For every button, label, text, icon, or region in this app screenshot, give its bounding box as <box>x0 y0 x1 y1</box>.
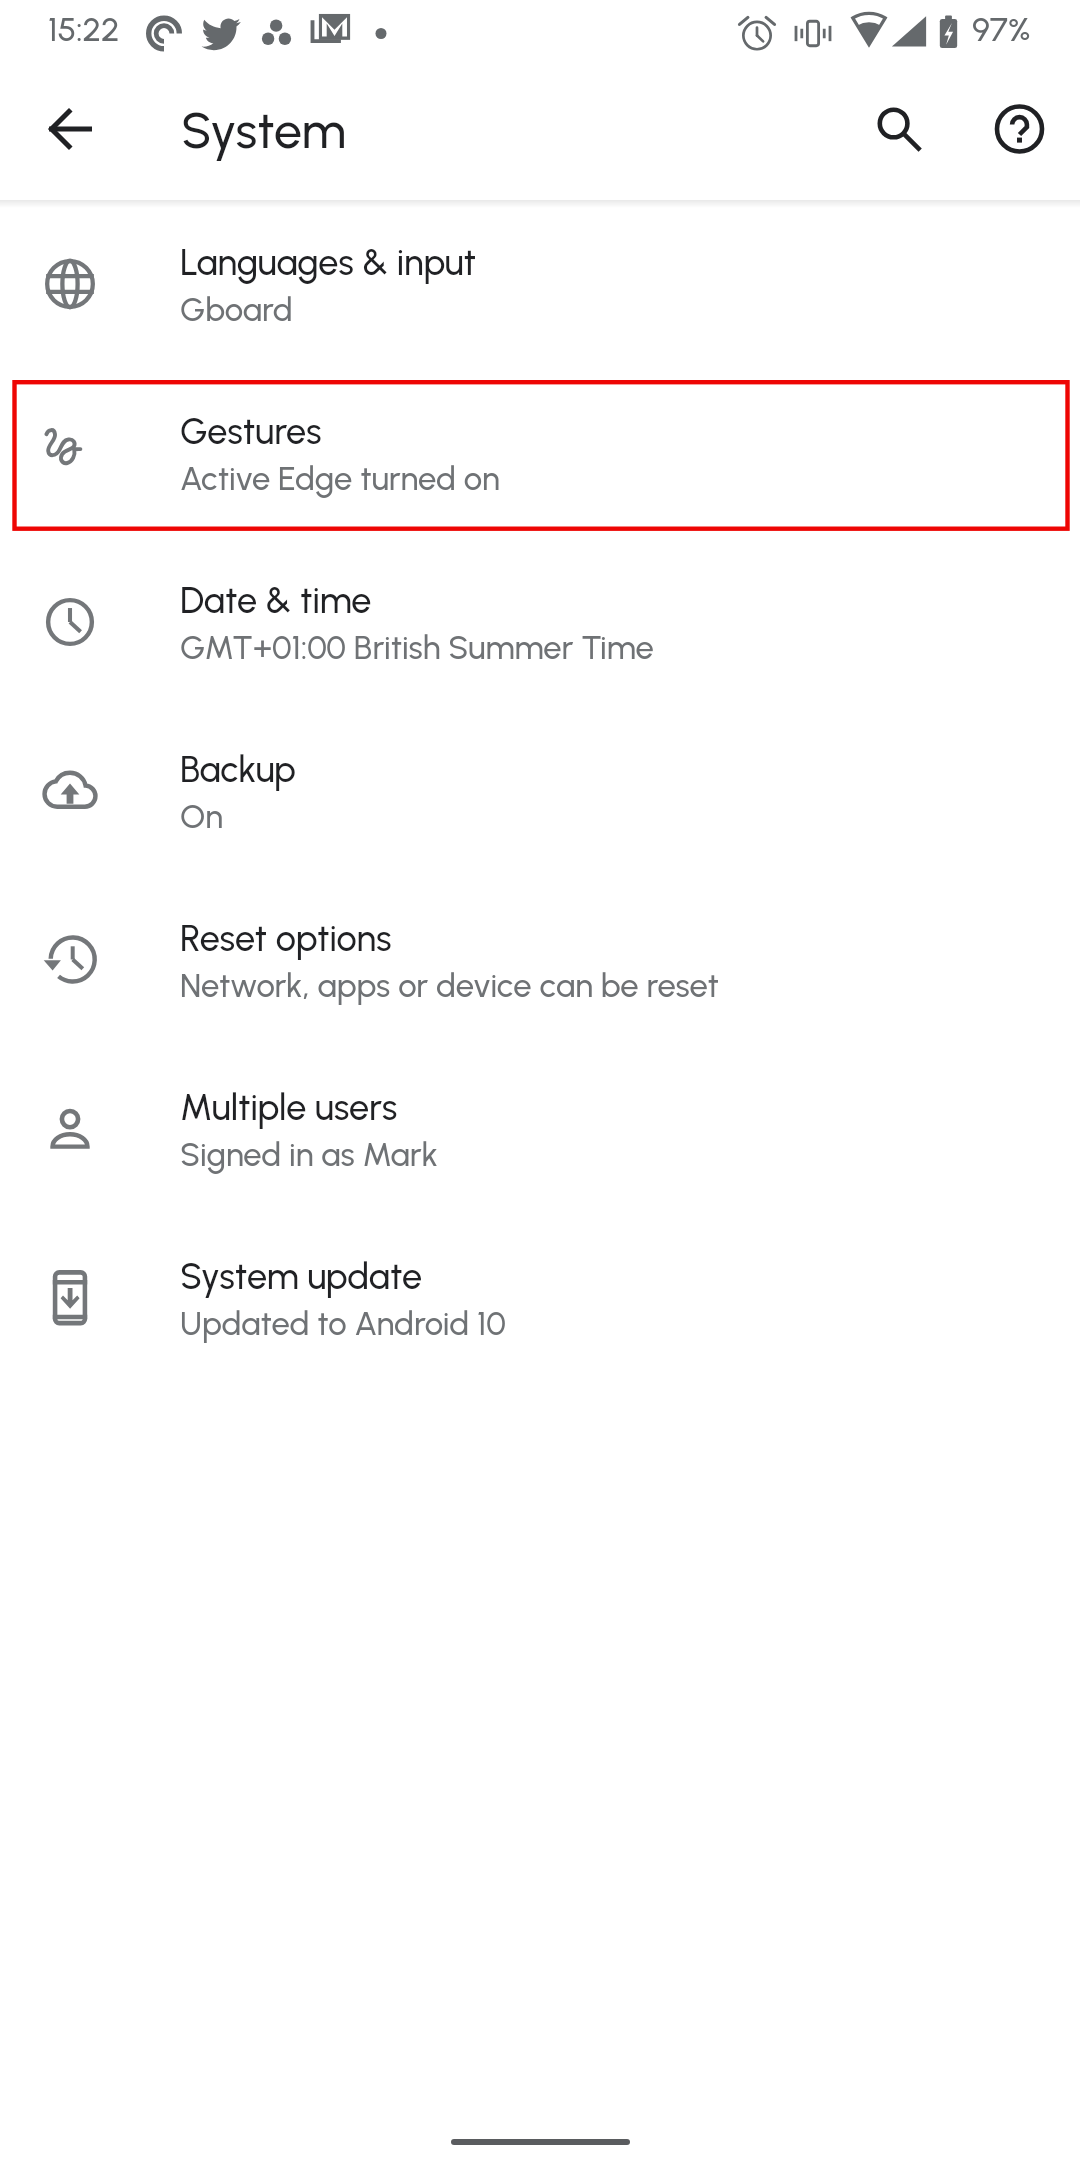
button[interactable]: Date & time <box>0 538 1080 707</box>
button[interactable]: Search <box>852 81 948 177</box>
staticText: 97% <box>972 9 1031 49</box>
staticText: Updated to Android 10 <box>180 1304 506 1343</box>
staticText: System update <box>180 1255 423 1298</box>
staticText: Backup <box>180 748 296 791</box>
staticText: GMT+01:00 British Summer Time <box>180 628 654 667</box>
staticText: System <box>181 100 346 160</box>
staticText: Gboard <box>180 290 293 329</box>
button[interactable]: Languages & input <box>0 200 1080 369</box>
staticText: Signed in as Mark <box>180 1135 438 1174</box>
button[interactable]: Help <box>971 81 1067 177</box>
staticText: Network, apps or device can be reset <box>180 966 719 1005</box>
button[interactable]: System update <box>0 1214 1080 1383</box>
staticText: Date & time <box>180 579 372 622</box>
staticText: 15:22 <box>48 9 120 49</box>
button[interactable]: Backup <box>0 707 1080 876</box>
staticText: Reset options <box>180 917 392 960</box>
staticText: Active Edge turned on <box>180 459 500 498</box>
button[interactable]: Back <box>22 81 118 177</box>
staticText: On <box>180 797 223 836</box>
staticText: Gestures <box>180 410 322 453</box>
button[interactable]: Reset options <box>0 876 1080 1045</box>
staticText: Multiple users <box>180 1086 398 1129</box>
staticText: Languages & input <box>180 241 477 284</box>
button[interactable]: Gestures <box>0 369 1080 538</box>
button[interactable]: Multiple users <box>0 1045 1080 1214</box>
